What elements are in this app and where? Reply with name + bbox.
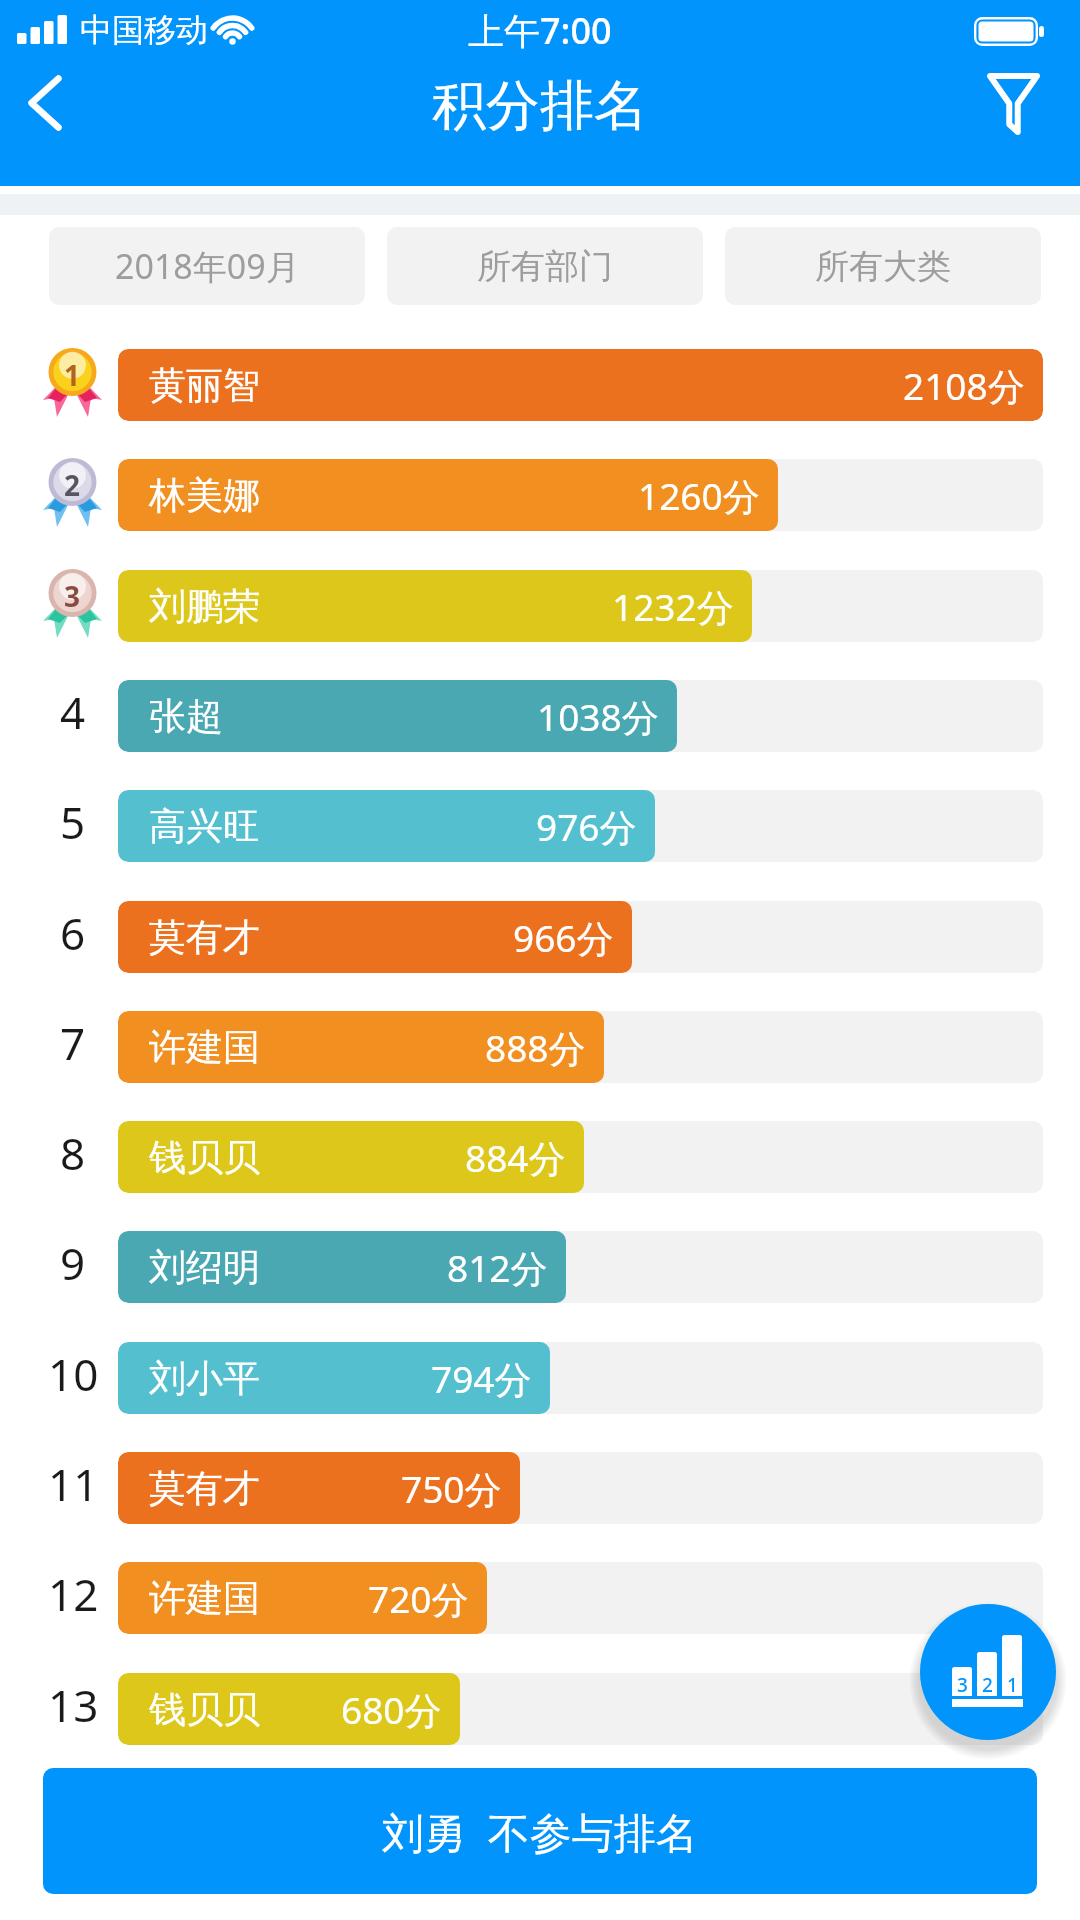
staticText: 750分	[401, 1463, 502, 1514]
button[interactable]: 1	[0, 349, 1080, 421]
button[interactable]: 7	[0, 1011, 1080, 1083]
button[interactable]: 13	[0, 1673, 1080, 1745]
staticText: 莫有才	[149, 1465, 260, 1512]
staticText: 积分排名	[432, 72, 648, 140]
staticText: 所有部门	[477, 245, 613, 288]
staticText: 1038分	[537, 691, 659, 742]
staticText: 2018年09月	[115, 243, 300, 289]
staticText: 5	[60, 792, 86, 852]
button[interactable]: Ranking chart	[920, 1604, 1056, 1740]
staticText: 10	[48, 1344, 99, 1404]
button[interactable]: 2018年09月	[49, 227, 365, 305]
staticText: 9	[60, 1233, 86, 1293]
staticText: 黄丽智	[149, 362, 260, 409]
staticText: 钱贝贝	[149, 1686, 260, 1733]
staticText: 2108分	[903, 360, 1025, 411]
staticText: 12	[48, 1564, 99, 1624]
button[interactable]: 10	[0, 1342, 1080, 1414]
staticText: 所有大类	[815, 245, 951, 288]
staticText: 888分	[485, 1022, 586, 1073]
staticText: 许建国	[149, 1575, 260, 1622]
staticText: 莫有才	[149, 914, 260, 961]
staticText: 钱贝贝	[149, 1134, 260, 1181]
staticText: 13	[48, 1675, 99, 1735]
staticText: 7	[60, 1013, 86, 1073]
staticText: 上午7:00	[468, 6, 612, 55]
staticText: 高兴旺	[149, 803, 260, 850]
staticText: 966分	[513, 912, 614, 963]
button[interactable]: 11	[0, 1452, 1080, 1524]
button[interactable]: 5	[0, 790, 1080, 862]
staticText: 1	[64, 356, 81, 394]
button[interactable]: 12	[0, 1562, 1080, 1634]
staticText: 2	[982, 1672, 993, 1698]
staticText: 1	[1007, 1672, 1018, 1698]
button[interactable]: 4	[0, 680, 1080, 752]
button[interactable]: 所有部门	[387, 227, 703, 305]
button[interactable]: 3	[0, 570, 1080, 642]
staticText: 6	[60, 903, 86, 963]
button[interactable]: Filter	[970, 62, 1080, 150]
staticText: 3	[957, 1672, 968, 1698]
button[interactable]: 8	[0, 1121, 1080, 1193]
staticText: 刘小平	[149, 1355, 260, 1402]
staticText: 林美娜	[149, 472, 260, 519]
staticText: 刘勇 不参与排名	[382, 1803, 698, 1860]
staticText: 1232分	[612, 581, 734, 632]
button[interactable]: 9	[0, 1231, 1080, 1303]
staticText: 11	[48, 1454, 99, 1514]
button[interactable]: 6	[0, 901, 1080, 973]
staticText: 812分	[447, 1242, 548, 1293]
staticText: 许建国	[149, 1024, 260, 1071]
staticText: 884分	[465, 1132, 566, 1183]
staticText: 刘鹏荣	[149, 583, 260, 630]
staticText: 1260分	[638, 470, 760, 521]
staticText: 刘绍明	[149, 1244, 260, 1291]
staticText: 794分	[431, 1353, 532, 1404]
button[interactable]: 所有大类	[725, 227, 1041, 305]
staticText: 720分	[368, 1573, 469, 1624]
staticText: 2	[64, 466, 81, 504]
button[interactable]: 2	[0, 459, 1080, 531]
staticText: 4	[60, 682, 86, 742]
staticText: 976分	[536, 801, 637, 852]
button[interactable]: Back	[0, 62, 96, 150]
staticText: 3	[64, 577, 81, 615]
button[interactable]: 刘勇 不参与排名	[43, 1768, 1037, 1894]
staticText: 680分	[341, 1684, 442, 1735]
staticText: 8	[60, 1123, 86, 1183]
staticText: 张超	[149, 693, 223, 740]
staticText: 中国移动	[80, 10, 208, 50]
